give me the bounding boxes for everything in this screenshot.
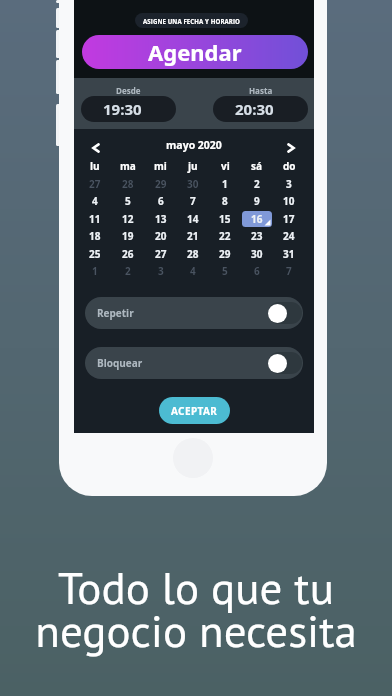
button[interactable]: 28 bbox=[177, 245, 209, 262]
staticText: 28 bbox=[187, 247, 199, 261]
staticText: lu bbox=[90, 159, 100, 173]
button[interactable]: 30 bbox=[177, 175, 209, 192]
button[interactable]: 17 bbox=[273, 210, 305, 227]
staticText: 19:30 bbox=[103, 99, 142, 119]
button[interactable]: 22 bbox=[209, 227, 241, 244]
button[interactable]: 1 bbox=[209, 175, 241, 192]
staticText: 2 bbox=[125, 264, 131, 278]
button[interactable]: 4 bbox=[177, 262, 209, 279]
button[interactable]: 19:30 bbox=[81, 96, 176, 122]
staticText: 15 bbox=[219, 212, 231, 226]
staticText: 19 bbox=[122, 229, 134, 243]
button[interactable]: 2 bbox=[241, 175, 273, 192]
staticText: 27 bbox=[155, 247, 167, 261]
button[interactable]: 2 bbox=[111, 262, 144, 279]
button[interactable]: Mes siguiente bbox=[281, 138, 301, 158]
staticText: 1 bbox=[92, 264, 98, 278]
button[interactable]: 13 bbox=[144, 210, 177, 227]
staticText: 11 bbox=[89, 212, 101, 226]
button[interactable]: 18 bbox=[78, 227, 111, 244]
button[interactable]: 31 bbox=[273, 245, 305, 262]
staticText: Todo lo que tu negocio necesita bbox=[35, 558, 357, 659]
staticText: do bbox=[283, 159, 296, 173]
button[interactable]: 15 bbox=[209, 210, 241, 227]
staticText: 24 bbox=[283, 229, 295, 243]
staticText: 20:30 bbox=[235, 99, 274, 119]
button[interactable]: 8 bbox=[209, 192, 241, 209]
staticText: 27 bbox=[89, 177, 101, 191]
staticText: 23 bbox=[251, 229, 263, 243]
button[interactable]: 23 bbox=[241, 227, 273, 244]
button[interactable]: 20:30 bbox=[213, 96, 308, 122]
staticText: 12 bbox=[122, 212, 134, 226]
staticText: 25 bbox=[89, 247, 101, 261]
staticText: 21 bbox=[187, 229, 199, 243]
button[interactable]: 27 bbox=[78, 175, 111, 192]
button[interactable]: 16 bbox=[241, 210, 273, 227]
staticText: ASIGNE UNA FECHA Y HORARIO bbox=[143, 17, 240, 25]
button[interactable]: 26 bbox=[111, 245, 144, 262]
staticText: vi bbox=[221, 159, 230, 173]
staticText: 16 bbox=[251, 212, 263, 226]
button[interactable]: 28 bbox=[111, 175, 144, 192]
button[interactable]: 1 bbox=[78, 262, 111, 279]
staticText: 28 bbox=[122, 177, 134, 191]
staticText: 5 bbox=[125, 194, 131, 208]
staticText: 13 bbox=[155, 212, 167, 226]
button[interactable]: 6 bbox=[144, 192, 177, 209]
staticText: 6 bbox=[158, 194, 164, 208]
button[interactable]: ASIGNE UNA FECHA Y HORARIO bbox=[135, 13, 248, 28]
staticText: Hasta bbox=[249, 85, 273, 96]
staticText: Repetir bbox=[97, 306, 134, 320]
staticText: 30 bbox=[187, 177, 199, 191]
staticText: 17 bbox=[283, 212, 295, 226]
button[interactable]: 5 bbox=[209, 262, 241, 279]
staticText: 6 bbox=[254, 264, 260, 278]
button[interactable]: ACEPTAR bbox=[159, 397, 230, 424]
button[interactable]: 25 bbox=[78, 245, 111, 262]
button[interactable]: Mes anterior bbox=[86, 138, 106, 158]
staticText: 1 bbox=[222, 177, 228, 191]
staticText: ma bbox=[120, 159, 136, 173]
button[interactable]: Bloquear bbox=[85, 347, 303, 379]
button[interactable]: 10 bbox=[273, 192, 305, 209]
button[interactable]: Repetir bbox=[85, 297, 303, 329]
button[interactable]: 12 bbox=[111, 210, 144, 227]
button[interactable]: 29 bbox=[209, 245, 241, 262]
staticText: 7 bbox=[190, 194, 196, 208]
staticText: 10 bbox=[283, 194, 295, 208]
button[interactable]: 11 bbox=[78, 210, 111, 227]
button[interactable]: 4 bbox=[78, 192, 111, 209]
staticText: mi bbox=[154, 159, 167, 173]
button[interactable]: 21 bbox=[177, 227, 209, 244]
button[interactable]: 20 bbox=[144, 227, 177, 244]
staticText: 8 bbox=[222, 194, 228, 208]
button[interactable]: Agendar bbox=[82, 35, 308, 69]
button[interactable]: 14 bbox=[177, 210, 209, 227]
staticText: 26 bbox=[122, 247, 134, 261]
button[interactable]: 7 bbox=[273, 262, 305, 279]
button[interactable]: 29 bbox=[144, 175, 177, 192]
staticText: 4 bbox=[190, 264, 196, 278]
staticText: Bloquear bbox=[97, 356, 143, 370]
button[interactable]: 3 bbox=[273, 175, 305, 192]
button[interactable]: 7 bbox=[177, 192, 209, 209]
button[interactable]: 27 bbox=[144, 245, 177, 262]
button[interactable]: 24 bbox=[273, 227, 305, 244]
staticText: 18 bbox=[89, 229, 101, 243]
staticText: 9 bbox=[254, 194, 260, 208]
button[interactable]: 19 bbox=[111, 227, 144, 244]
staticText: 22 bbox=[219, 229, 231, 243]
staticText: 29 bbox=[155, 177, 167, 191]
button[interactable]: 9 bbox=[241, 192, 273, 209]
button[interactable]: 30 bbox=[241, 245, 273, 262]
staticText: 7 bbox=[286, 264, 292, 278]
button[interactable]: 5 bbox=[111, 192, 144, 209]
staticText: Agendar bbox=[148, 37, 242, 67]
staticText: 2 bbox=[254, 177, 260, 191]
button[interactable]: 6 bbox=[241, 262, 273, 279]
staticText: 3 bbox=[286, 177, 292, 191]
button[interactable]: 3 bbox=[144, 262, 177, 279]
staticText: 30 bbox=[251, 247, 263, 261]
staticText: ACEPTAR bbox=[171, 404, 218, 418]
